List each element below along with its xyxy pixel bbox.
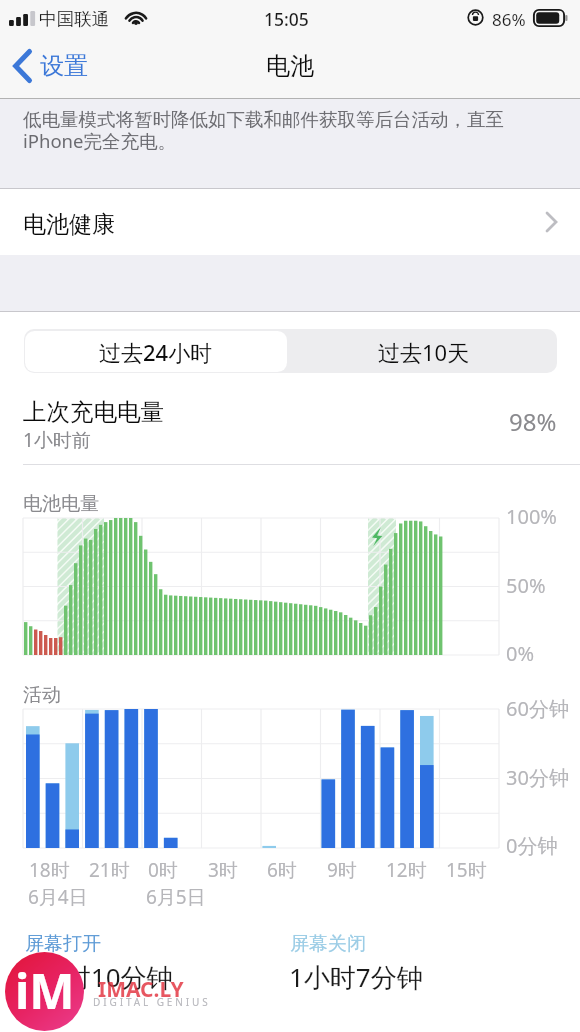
staticText: 电池 [266, 51, 314, 81]
staticText: 3时 [208, 857, 238, 883]
button[interactable]: 电池健康 [0, 189, 580, 255]
staticText: 1小时10分钟 [24, 959, 173, 995]
staticText: DIGITAL GENIUS [93, 995, 211, 1009]
button[interactable]: 过去10天 [291, 331, 557, 372]
button[interactable]: 设置 [0, 43, 98, 89]
staticText: 6月5日 [146, 884, 206, 910]
staticText: 0时 [148, 857, 178, 883]
staticText: IMAC.LY [98, 975, 184, 1004]
staticText: 50% [506, 572, 546, 599]
staticText: 60分钟 [506, 695, 569, 722]
staticText: 6月4日 [28, 884, 88, 910]
staticText: 21时 [89, 857, 130, 883]
staticText: 设置 [40, 51, 88, 81]
staticText: 中国联通 [39, 8, 109, 30]
staticText: 98% [509, 405, 557, 438]
staticText: 过去10天 [378, 337, 470, 367]
staticText: 电池健康 [23, 210, 115, 239]
staticText: 屏幕关闭 [290, 932, 366, 956]
staticText: 过去24小时 [99, 337, 213, 367]
button[interactable]: 过去24小时 [25, 331, 287, 372]
staticText: 0% [506, 640, 535, 667]
staticText: 30分钟 [506, 764, 569, 791]
staticText: 86% [492, 8, 526, 31]
staticText: 15时 [446, 857, 487, 883]
staticText: 12时 [386, 857, 427, 883]
staticText: 活动 [23, 683, 61, 707]
staticText: 15:05 [264, 7, 309, 31]
staticText: 1小时7分钟 [289, 959, 423, 995]
staticText: 18时 [29, 857, 70, 883]
other: 电池健康 [545, 211, 558, 233]
staticText: 屏幕打开 [25, 932, 101, 956]
staticText: 9时 [327, 857, 357, 883]
staticText: 0分钟 [506, 832, 558, 859]
staticText: 低电量模式将暂时降低如下载和邮件获取等后台活动，直至 iPhone完全充电。 [23, 108, 504, 154]
staticText: 电池电量 [23, 492, 99, 516]
staticText: 100% [506, 503, 557, 530]
staticText: 上次充电电量 [23, 397, 164, 427]
staticText: 1小时前 [23, 427, 91, 453]
staticText: iM [15, 958, 75, 1023]
staticText: 6时 [267, 857, 297, 883]
